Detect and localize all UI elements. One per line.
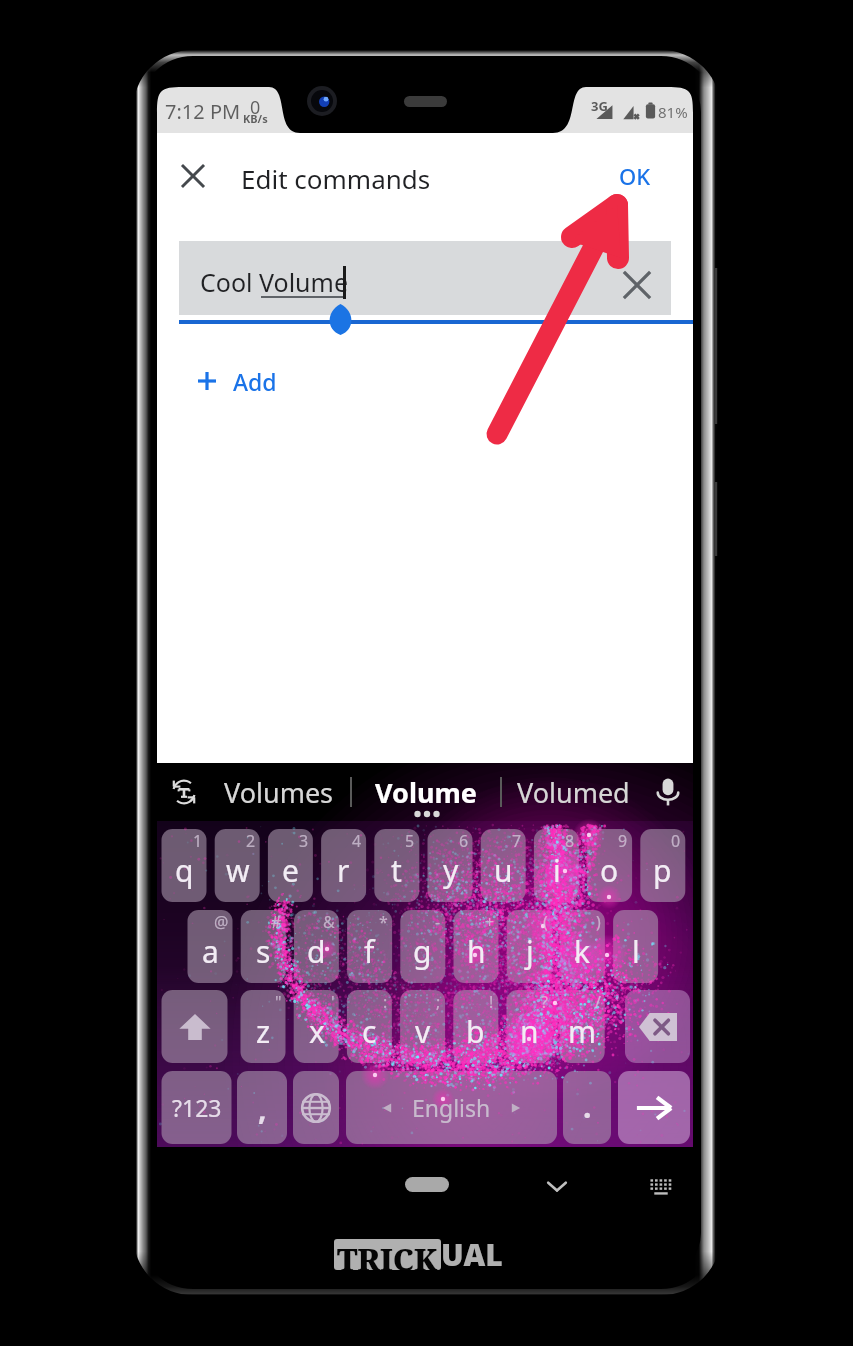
button[interactable]: OK [606, 143, 664, 209]
staticText: u [494, 850, 513, 891]
staticText: 7 [512, 830, 522, 852]
staticText: w [226, 850, 250, 891]
button[interactable]: Translate [160, 765, 208, 819]
staticText: + [485, 911, 495, 933]
button[interactable]: r [321, 829, 366, 902]
button[interactable]: Switch keyboard [643, 1168, 679, 1204]
staticText: 4 [352, 830, 362, 852]
button[interactable]: s [241, 910, 286, 983]
staticText: @ [214, 911, 229, 933]
staticText: i [553, 850, 561, 891]
staticText: 81% [658, 102, 688, 122]
staticText: Volumes [224, 774, 334, 811]
button[interactable]: v [400, 990, 445, 1063]
staticText: ( [543, 911, 548, 933]
staticText: r [337, 850, 350, 891]
staticText: : [383, 991, 388, 1013]
staticText: 0 [250, 95, 261, 120]
button[interactable]: Close [160, 143, 226, 209]
staticText: g [413, 931, 432, 972]
staticText: m [568, 1011, 597, 1052]
staticText: n [520, 1011, 539, 1052]
button[interactable]: z [241, 990, 286, 1063]
button[interactable]: w [215, 829, 260, 902]
button[interactable]: Backspace [625, 990, 690, 1063]
staticText: Volumed [517, 774, 630, 811]
staticText: 9 [618, 830, 628, 852]
button[interactable]: i [534, 829, 579, 902]
button[interactable]: t [374, 829, 419, 902]
button[interactable] [179, 241, 671, 315]
staticText: 3G [591, 97, 608, 115]
staticText: KB/s [243, 111, 268, 126]
staticText: & [323, 911, 335, 933]
staticText: 8 [565, 830, 575, 852]
button[interactable]: g [400, 910, 445, 983]
button[interactable]: , [237, 1071, 287, 1144]
button[interactable]: Volume [362, 765, 490, 819]
button[interactable]: Volumes [214, 765, 344, 819]
button[interactable]: h [454, 910, 499, 983]
staticText: 5 [405, 830, 415, 852]
button[interactable]: u [481, 829, 526, 902]
staticText: e [282, 850, 299, 891]
button[interactable]: n [507, 990, 552, 1063]
button[interactable]: c [347, 990, 392, 1063]
button[interactable]: Enter [618, 1071, 690, 1144]
staticText: ; [436, 991, 441, 1013]
button[interactable]: Change language [293, 1071, 339, 1144]
staticText: - [435, 911, 441, 933]
staticText: t [391, 850, 402, 891]
button[interactable]: l [613, 910, 658, 983]
staticText: # [271, 911, 282, 933]
button[interactable]: Home [405, 1177, 449, 1192]
staticText: English [412, 1092, 491, 1123]
button[interactable]: q [162, 829, 207, 902]
button[interactable]: o [587, 829, 632, 902]
button[interactable]: b [453, 990, 498, 1063]
staticText: 2 [246, 830, 256, 852]
button[interactable]: d [294, 910, 339, 983]
button[interactable]: a [188, 910, 233, 983]
button[interactable]: m [560, 990, 605, 1063]
staticText: c [362, 1011, 377, 1052]
button[interactable]: English [346, 1071, 557, 1144]
staticText: " [275, 991, 282, 1013]
staticText: 1 [193, 830, 203, 852]
button[interactable]: j [507, 910, 552, 983]
button[interactable]: f [347, 910, 392, 983]
staticText: ! [489, 991, 494, 1013]
staticText: * [379, 911, 388, 933]
staticText: , [258, 1088, 267, 1129]
button[interactable]: e [268, 829, 313, 902]
staticText: 3 [299, 830, 309, 852]
staticText: OK [619, 161, 651, 191]
staticText: 0 [671, 830, 681, 852]
button[interactable]: Hide keyboard [539, 1168, 575, 1204]
staticText: ' [331, 991, 335, 1013]
button[interactable]: y [428, 829, 473, 902]
staticText: a [202, 931, 219, 972]
staticText: ? [541, 991, 548, 1013]
button[interactable]: Volumed [508, 765, 638, 819]
button[interactable]: p [640, 829, 685, 902]
button[interactable]: Clear text [616, 264, 658, 306]
staticText: 6 [459, 830, 469, 852]
staticText: d [307, 931, 326, 972]
button[interactable]: Add [198, 360, 277, 402]
button[interactable]: x [294, 990, 339, 1063]
staticText: k [574, 931, 591, 972]
staticText: j [526, 931, 534, 972]
button[interactable]: k [560, 910, 605, 983]
button[interactable]: Voice input [645, 765, 691, 819]
staticText: p [653, 850, 672, 891]
staticText: v [415, 1011, 431, 1052]
button[interactable]: . [563, 1071, 611, 1144]
staticText: UAL [441, 1234, 503, 1275]
button[interactable]: Shift [162, 990, 228, 1063]
staticText: ?123 [172, 1092, 222, 1123]
staticText: / [595, 991, 601, 1013]
button[interactable]: ?123 [162, 1071, 232, 1144]
staticText: . [583, 1086, 592, 1127]
staticText: x [309, 1011, 325, 1052]
